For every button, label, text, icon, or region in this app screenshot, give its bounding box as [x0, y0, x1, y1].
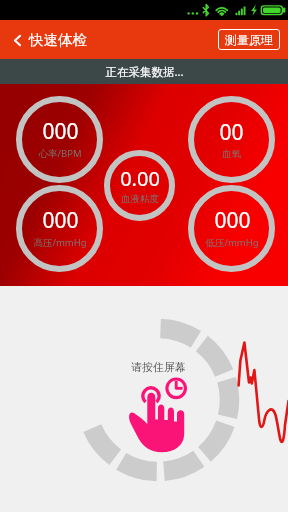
staticText: 测量原理: [225, 32, 273, 47]
staticText: 正在采集数据...: [105, 64, 184, 80]
staticText: 0.00: [120, 165, 160, 192]
staticText: 低压/mmHg: [205, 236, 259, 249]
button[interactable]: 测量原理: [218, 29, 280, 50]
staticText: 血液粘度: [121, 193, 159, 205]
staticText: 000: [42, 117, 79, 146]
staticText: 请按住屏幕: [131, 360, 186, 374]
button[interactable]: 高压/mmHg: [16, 185, 103, 272]
staticText: 高压/mmHg: [33, 236, 87, 249]
other: Back: [11, 34, 24, 47]
button[interactable]: 血氧: [188, 96, 275, 183]
button[interactable]: 心率/BPM: [16, 96, 103, 183]
staticText: 000: [214, 206, 251, 235]
button[interactable]: Back: [6, 25, 92, 55]
staticText: 00: [219, 118, 244, 147]
button[interactable]: 血液粘度: [104, 150, 175, 221]
button[interactable]: 低压/mmHg: [188, 185, 275, 272]
staticText: 血氧: [222, 148, 241, 160]
staticText: 心率/BPM: [38, 147, 82, 160]
staticText: 快速体检: [29, 31, 87, 49]
staticText: 000: [42, 206, 79, 235]
